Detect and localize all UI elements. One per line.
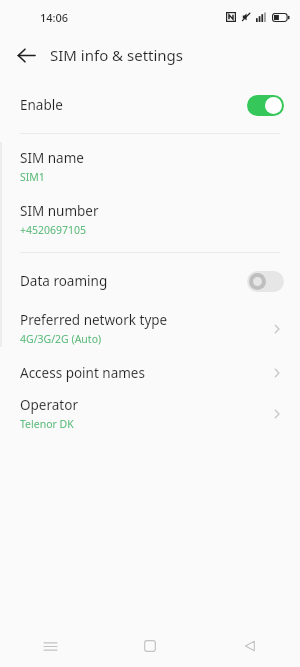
button[interactable]: Enable SIM [247,95,284,116]
staticText: +4520697105 [20,223,87,237]
staticText: 4G/3G/2G (Auto) [20,332,102,346]
staticText: Enable [20,96,247,114]
staticText: Operator [20,396,78,414]
button[interactable]: SIM name [0,147,300,186]
button[interactable]: SIM number [0,200,300,239]
staticText: SIM1 [20,170,45,184]
button[interactable]: Data roaming [0,262,300,300]
staticText: Access point names [20,364,270,382]
staticText: Preferred network type [20,311,168,329]
staticText: Telenor DK [20,417,74,431]
button[interactable]: Data roaming toggle [247,271,284,292]
staticText: Data roaming [20,272,247,290]
staticText: SIM number [20,202,99,220]
button[interactable]: Access point names [0,360,300,386]
staticText: SIM info & settings [50,45,184,65]
button[interactable]: Home [100,625,200,667]
button[interactable]: Operator [0,394,300,433]
button[interactable]: Recent apps [0,625,100,667]
button[interactable]: Back [8,37,44,73]
button[interactable]: Preferred network type [0,309,300,348]
button[interactable]: Enable [0,88,300,122]
staticText: SIM name [20,149,84,167]
staticText: 14:06 [40,10,69,25]
button[interactable]: Back [200,625,300,667]
